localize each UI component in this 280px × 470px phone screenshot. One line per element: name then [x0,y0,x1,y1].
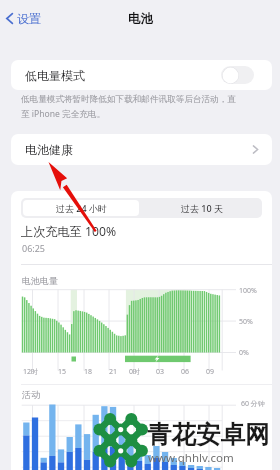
button[interactable]: 低电量模式 [11,60,272,90]
staticText: 过去 10 天 [181,202,223,214]
staticText: 低电量模式将暂时降低如下载和邮件讯取等后台活动，直 [21,94,236,105]
staticText: 青花安卓网 [147,419,270,450]
staticText: 设置 [17,11,41,26]
button[interactable]: 过去 24 小时 [23,200,139,216]
staticText: 0时 [129,367,141,377]
staticText: 09 [206,367,215,377]
staticText: 至 iPhone 完全充电。 [21,108,106,120]
staticText: 上次充电至 100% [21,223,117,240]
staticText: 18 [84,367,93,377]
staticText: 50% [239,317,253,327]
staticText: 03 [156,367,165,377]
staticText: 21 [109,367,118,377]
button[interactable]: 过去 10 天 [141,198,262,218]
staticText: 15 [58,367,67,377]
staticText: 100% [239,286,257,296]
button[interactable]: 电池健康 [11,134,272,165]
staticText: 电池电量 [22,275,58,286]
staticText: 06:25 [22,242,46,254]
staticText: www.qhhlv.com [148,450,234,466]
staticText: 电池健康 [25,142,73,157]
staticText: 活动 [22,389,40,400]
staticText: 06 [181,367,190,377]
button[interactable]: 设置 [5,11,41,26]
staticText: 12时 [23,367,39,377]
staticText: 低电量模式 [25,68,85,83]
button[interactable]: Low power mode toggle [221,66,254,84]
staticText: 电池 [128,11,153,27]
staticText: 0% [239,348,249,358]
staticText: 60 分钟 [241,399,265,409]
staticText: 过去 24 小时 [56,202,107,214]
